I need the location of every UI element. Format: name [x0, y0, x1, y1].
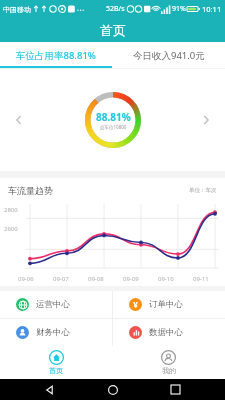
staticText: 车位占用率88.81%	[16, 49, 96, 62]
staticText: ¥	[133, 299, 138, 310]
staticText: 2800	[4, 206, 18, 214]
staticText: 单位：车次	[189, 187, 217, 194]
staticText: 数据中心	[149, 327, 183, 338]
button[interactable]: 我的	[112, 346, 225, 379]
button[interactable]: ¥	[113, 291, 225, 318]
button[interactable]: Previous	[8, 109, 30, 131]
button[interactable]: 首页	[0, 346, 112, 379]
staticText: 车流量趋势	[8, 185, 53, 196]
staticText: 我的	[162, 366, 176, 375]
staticText: 2600	[4, 225, 18, 233]
button[interactable]: 运营中心	[0, 291, 112, 318]
staticText: 09-07	[53, 275, 69, 283]
staticText: 88.81%	[96, 110, 131, 124]
staticText: 09-11	[193, 275, 209, 283]
staticText: 09-09	[123, 275, 139, 283]
staticText: 运营中心	[36, 299, 70, 310]
staticText: 订单中心	[149, 299, 183, 310]
staticText: 财务中心	[36, 327, 70, 338]
button[interactable]: Recents	[163, 379, 187, 400]
button[interactable]: 今日收入941.0元	[112, 42, 225, 68]
staticText: 总车位10800	[100, 124, 127, 130]
staticText: 10:11	[202, 4, 222, 14]
button[interactable]: 车位占用率88.81%	[0, 42, 112, 68]
button[interactable]: 数据中心	[113, 319, 225, 346]
staticText: 中国移动	[3, 5, 31, 14]
button[interactable]: Back	[38, 379, 62, 400]
staticText: 09-08	[88, 275, 104, 283]
button[interactable]: 财务中心	[0, 319, 112, 346]
staticText: 首页	[49, 366, 63, 375]
staticText: 首页	[100, 22, 126, 38]
button[interactable]: Next	[195, 109, 217, 131]
staticText: 09-10	[158, 275, 174, 283]
staticText: 91%	[172, 4, 186, 14]
staticText: 09-06	[18, 275, 34, 283]
staticText: 今日收入941.0元	[133, 49, 205, 62]
staticText: 52B/s	[106, 4, 125, 14]
button[interactable]: Home	[101, 379, 125, 400]
